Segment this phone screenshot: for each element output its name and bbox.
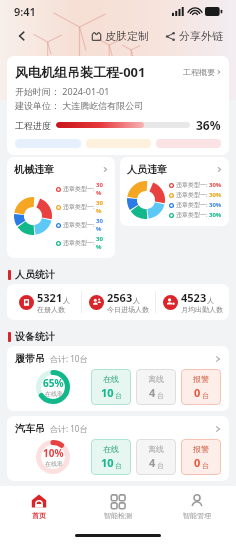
button[interactable]: 人员违章 bbox=[120, 157, 229, 226]
staticText: 报警 bbox=[193, 374, 209, 384]
staticText: 违章类型一: bbox=[63, 185, 95, 193]
staticText: 人员统计 bbox=[15, 268, 55, 281]
staticText: 30% bbox=[96, 217, 108, 233]
staticText: 10% bbox=[43, 446, 64, 460]
staticText: 汽车吊 bbox=[15, 422, 45, 435]
staticText: 台 bbox=[157, 391, 164, 400]
staticText: 月均出勤人数 bbox=[181, 305, 223, 314]
staticText: 5321 bbox=[37, 290, 63, 305]
staticText: 违章类型一: bbox=[176, 201, 208, 209]
staticText: 10 bbox=[101, 385, 114, 400]
staticText: 在线 bbox=[103, 444, 119, 454]
staticText: 违章类型一: bbox=[176, 211, 208, 219]
staticText: 4523 bbox=[181, 290, 207, 305]
staticText: 建设单位： 大连腾屹信有限公司 bbox=[15, 99, 144, 111]
staticText: 分享外链 bbox=[179, 29, 223, 43]
staticText: 设备统计 bbox=[15, 330, 55, 343]
staticText: 台 bbox=[202, 391, 209, 400]
button[interactable]: 5321 bbox=[7, 290, 81, 314]
staticText: 违章类型一: bbox=[63, 239, 95, 247]
staticText: 0 bbox=[194, 385, 201, 400]
staticText: 在线率 bbox=[45, 390, 63, 398]
staticText: 30% bbox=[209, 181, 222, 189]
staticText: 合计: 10台 bbox=[50, 423, 88, 434]
staticText: 在线 bbox=[103, 374, 119, 384]
button[interactable]: 剩余天数 bbox=[86, 139, 151, 148]
staticText: 首页 bbox=[32, 511, 46, 520]
staticText: 65% bbox=[43, 376, 64, 390]
staticText: 工程概要 bbox=[183, 67, 215, 77]
button[interactable]: 在线 bbox=[91, 439, 131, 475]
staticText: 30% bbox=[96, 235, 108, 251]
staticText: 在线率 bbox=[45, 460, 63, 468]
staticText: 风电机组吊装工程-001 bbox=[15, 63, 146, 81]
staticText: 智能检测 bbox=[104, 511, 132, 520]
button[interactable]: 离线 bbox=[136, 369, 176, 405]
button[interactable]: 总工期 bbox=[156, 139, 221, 148]
staticText: 违章类型一: bbox=[176, 191, 208, 199]
staticText: 人 bbox=[133, 296, 140, 305]
button[interactable]: 4523 bbox=[156, 290, 229, 314]
staticText: 10 bbox=[101, 455, 114, 470]
button[interactable]: 分享外链 bbox=[162, 29, 226, 43]
staticText: 30% bbox=[96, 181, 108, 197]
staticText: 30% bbox=[209, 191, 222, 199]
staticText: 在册人数 bbox=[37, 305, 65, 314]
staticText: 人 bbox=[63, 296, 70, 305]
button[interactable]: 智能检测 bbox=[78, 486, 157, 526]
staticText: 今日进场人数 bbox=[107, 305, 149, 314]
staticText: 违章类型一: bbox=[63, 221, 95, 229]
button[interactable]: 皮肤定制 bbox=[88, 29, 152, 43]
staticText: 台 bbox=[157, 461, 164, 470]
staticText: 合计: 10台 bbox=[50, 353, 88, 364]
button[interactable]: 报警 bbox=[181, 369, 221, 405]
staticText: 30% bbox=[209, 201, 222, 209]
staticText: 30% bbox=[209, 211, 222, 219]
staticText: 4 bbox=[149, 455, 156, 470]
button[interactable]: 机械违章 bbox=[7, 157, 115, 258]
staticText: 皮肤定制 bbox=[105, 29, 149, 43]
staticText: 履带吊 bbox=[15, 352, 45, 365]
staticText: 开始时间： 2024-01-01 bbox=[15, 85, 110, 97]
button[interactable]: Back bbox=[10, 24, 34, 48]
button[interactable]: 智能管理 bbox=[157, 486, 236, 526]
staticText: 机械违章 bbox=[14, 163, 54, 176]
button[interactable]: 2563 bbox=[82, 290, 155, 314]
button[interactable]: 工程概要 bbox=[183, 67, 221, 77]
staticText: 报警 bbox=[193, 444, 209, 454]
staticText: 4 bbox=[149, 385, 156, 400]
staticText: 台 bbox=[115, 391, 122, 400]
button[interactable]: 汽车吊 bbox=[7, 416, 229, 481]
staticText: 36% bbox=[196, 117, 221, 133]
staticText: 人员违章 bbox=[127, 163, 167, 176]
staticText: 0 bbox=[194, 455, 201, 470]
staticText: 违章类型一: bbox=[63, 203, 95, 211]
button[interactable]: 离线 bbox=[136, 439, 176, 475]
staticText: 智能管理 bbox=[183, 511, 211, 520]
staticText: 离线 bbox=[148, 374, 164, 384]
staticText: 台 bbox=[202, 461, 209, 470]
button[interactable]: 在线 bbox=[91, 369, 131, 405]
staticText: 2563 bbox=[107, 290, 133, 305]
staticText: 人 bbox=[207, 296, 214, 305]
button[interactable]: 报警 bbox=[181, 439, 221, 475]
staticText: 离线 bbox=[148, 444, 164, 454]
staticText: 9:41 bbox=[14, 4, 36, 19]
staticText: 台 bbox=[115, 461, 122, 470]
staticText: 30% bbox=[96, 199, 108, 215]
button[interactable]: 履带吊 bbox=[7, 346, 229, 411]
staticText: 违章类型一: bbox=[176, 181, 208, 189]
staticText: 工程进度 bbox=[15, 120, 51, 131]
button[interactable]: 首页 bbox=[0, 486, 78, 526]
